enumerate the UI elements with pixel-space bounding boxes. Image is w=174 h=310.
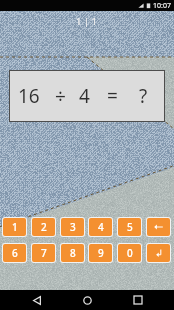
staticText: ÷	[55, 83, 66, 109]
button[interactable]: Back	[23, 290, 51, 310]
staticText: 6	[12, 246, 18, 260]
staticText: 4	[98, 220, 104, 234]
button[interactable]: 7	[32, 244, 55, 262]
staticText: 3	[70, 220, 76, 234]
button[interactable]: 5	[118, 218, 141, 236]
button[interactable]: Recent apps	[124, 290, 152, 310]
button[interactable]: Backspace	[147, 218, 170, 236]
staticText: 2	[41, 220, 47, 234]
button[interactable]: 6	[3, 244, 26, 262]
button[interactable]: 2	[32, 218, 55, 236]
staticText: 16	[18, 83, 40, 109]
button[interactable]: 1	[3, 218, 26, 236]
staticText: 1	[12, 220, 18, 234]
button[interactable]: 8	[61, 244, 84, 262]
button[interactable]: Enter	[147, 244, 170, 262]
button[interactable]: Home	[73, 290, 101, 310]
staticText: 0	[127, 246, 133, 260]
staticText: ?	[139, 83, 148, 109]
button[interactable]: 9	[89, 244, 112, 262]
staticText: 8	[70, 246, 76, 260]
button[interactable]: 3	[61, 218, 84, 236]
staticText: 10:07	[153, 1, 171, 11]
staticText: 7	[41, 246, 47, 260]
staticText: 9	[98, 246, 104, 260]
button[interactable]: 4	[89, 218, 112, 236]
staticText: =	[107, 83, 118, 109]
staticText: 1 | 1	[76, 15, 98, 28]
staticText: 4	[79, 83, 90, 109]
button[interactable]: 0	[118, 244, 141, 262]
staticText: 5	[127, 220, 133, 234]
